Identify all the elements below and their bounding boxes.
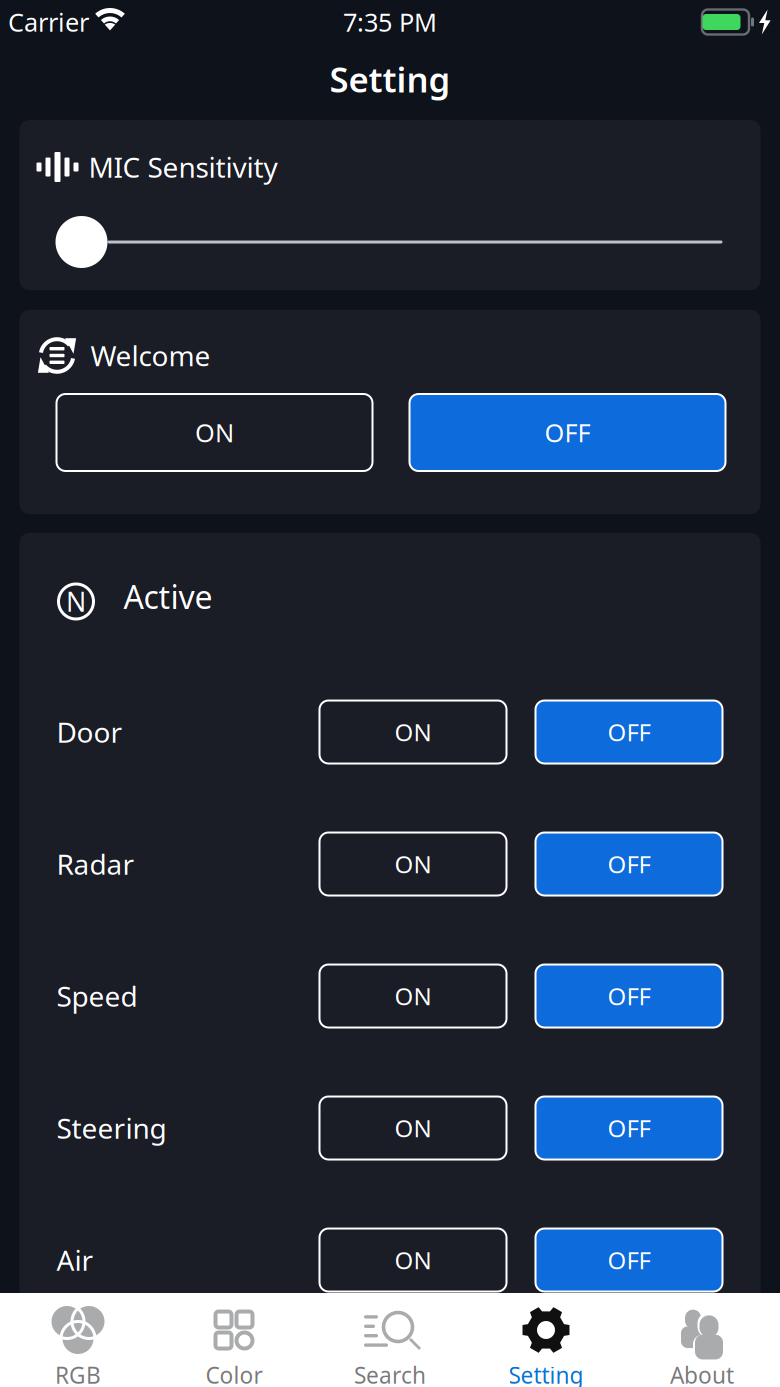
button[interactable]: Setting: [468, 1293, 624, 1387]
button[interactable]: ON: [319, 1096, 506, 1159]
button[interactable]: OFF: [535, 700, 722, 763]
button[interactable]: About: [624, 1293, 780, 1387]
staticText: Search: [354, 1360, 426, 1387]
button[interactable]: ON: [319, 1228, 506, 1291]
staticText: ON: [394, 848, 431, 880]
button[interactable]: OFF: [409, 394, 725, 471]
staticText: OFF: [607, 980, 650, 1012]
staticText: N: [66, 584, 86, 619]
button[interactable]: Color: [156, 1293, 312, 1387]
button[interactable]: OFF: [535, 1228, 722, 1291]
button[interactable]: ON: [56, 394, 372, 471]
staticText: OFF: [544, 416, 590, 449]
staticText: Speed: [56, 977, 137, 1015]
button[interactable]: OFF: [535, 1096, 722, 1159]
staticText: 7:35 PM: [343, 5, 437, 39]
staticText: RGB: [55, 1360, 101, 1387]
staticText: About: [670, 1360, 734, 1387]
staticText: ON: [394, 1112, 431, 1144]
staticText: Steering: [56, 1109, 166, 1147]
staticText: OFF: [607, 848, 650, 880]
staticText: Setting: [329, 56, 450, 102]
button[interactable]: ON: [319, 700, 506, 763]
staticText: Door: [56, 713, 122, 751]
button[interactable]: MIC Sensitivity slider: [55, 216, 107, 268]
button[interactable]: OFF: [535, 832, 722, 895]
staticText: Air: [56, 1241, 93, 1279]
button[interactable]: Search: [312, 1293, 468, 1387]
staticText: OFF: [607, 1112, 650, 1144]
staticText: OFF: [607, 1244, 650, 1276]
button[interactable]: ON: [319, 964, 506, 1027]
staticText: ON: [195, 416, 234, 449]
staticText: Color: [205, 1360, 262, 1387]
staticText: ON: [394, 1244, 431, 1276]
staticText: Radar: [56, 845, 134, 883]
button[interactable]: RGB: [0, 1293, 156, 1387]
staticText: Setting: [508, 1360, 583, 1387]
staticText: Active: [123, 575, 212, 618]
staticText: Carrier: [8, 5, 89, 39]
staticText: Welcome: [90, 337, 210, 374]
staticText: MIC Sensitivity: [88, 148, 277, 186]
staticText: ON: [394, 716, 431, 748]
button[interactable]: OFF: [535, 964, 722, 1027]
button[interactable]: ON: [319, 832, 506, 895]
staticText: OFF: [607, 716, 650, 748]
staticText: ON: [394, 980, 431, 1012]
